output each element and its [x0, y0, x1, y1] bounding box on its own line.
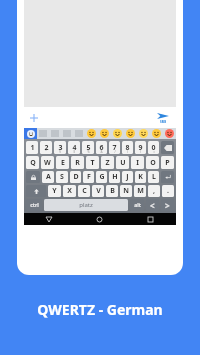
staticText: E [61, 158, 65, 168]
button[interactable]: Emoji [124, 128, 137, 139]
button[interactable]: K [135, 171, 146, 183]
staticText: " [45, 150, 47, 154]
button[interactable]: platz [44, 199, 128, 211]
button[interactable]: G [96, 171, 107, 183]
button[interactable]: Emoji [150, 128, 163, 139]
staticText: 3 [58, 143, 63, 153]
button[interactable]: Right [161, 199, 174, 211]
staticText: SMS [160, 120, 167, 124]
other: Right [161, 199, 174, 211]
button[interactable]: Backspace [161, 141, 174, 154]
staticText: 2 [44, 143, 49, 153]
button[interactable]: C [78, 185, 90, 197]
button[interactable]: B [106, 185, 118, 197]
button[interactable]: ctrl [26, 199, 42, 211]
staticText: $ [73, 150, 75, 154]
staticText: Y [52, 186, 57, 196]
staticText: platz [79, 201, 93, 209]
button[interactable]: J [122, 171, 133, 183]
button[interactable]: Left [146, 199, 159, 211]
button[interactable]: 6 [96, 141, 107, 154]
button[interactable]: D [70, 171, 81, 183]
button[interactable]: Emoji [98, 128, 111, 139]
button[interactable]: Z [101, 156, 114, 169]
button[interactable]: N [120, 185, 132, 197]
button[interactable]: V [92, 185, 104, 197]
button[interactable]: Caps lock [26, 171, 40, 183]
staticText: B [110, 186, 115, 196]
staticText: V [96, 186, 101, 196]
button[interactable]: alt [130, 199, 144, 211]
staticText: I [136, 158, 139, 168]
button[interactable]: X [63, 185, 76, 197]
button[interactable]: W [41, 156, 54, 169]
staticText: C [82, 186, 87, 196]
button[interactable]: U [116, 156, 129, 169]
button[interactable]: Recent apps [125, 213, 176, 225]
button[interactable]: . [162, 185, 174, 197]
button[interactable]: F [83, 171, 94, 183]
button[interactable]: Enter [161, 171, 174, 183]
other: Backspace [161, 141, 174, 154]
button[interactable]: Home [74, 213, 125, 225]
button[interactable]: R [71, 156, 84, 169]
staticText: > [165, 200, 170, 211]
button[interactable]: T [86, 156, 99, 169]
staticText: N [123, 186, 129, 196]
button[interactable]: Add attachment [24, 107, 44, 128]
staticText: W [44, 158, 51, 168]
button[interactable]: 2 [40, 141, 52, 154]
staticText: § [59, 150, 61, 154]
staticText: , [153, 186, 155, 196]
button[interactable]: H [109, 171, 120, 183]
button[interactable]: Y [48, 185, 61, 197]
button[interactable]: Emoji [163, 128, 176, 139]
button[interactable]: 4 [68, 141, 80, 154]
staticText: G [99, 172, 105, 182]
button[interactable]: Emoji [111, 128, 124, 139]
staticText: H [112, 172, 118, 182]
staticText: X [67, 186, 72, 196]
staticText: & [100, 150, 103, 154]
button[interactable]: 0 [148, 141, 159, 154]
button[interactable]: 9 [135, 141, 146, 154]
staticText: 6 [99, 143, 104, 153]
staticText: R [75, 158, 80, 168]
button[interactable]: A [42, 171, 54, 183]
button[interactable]: , [148, 185, 160, 197]
staticText: < [150, 200, 155, 211]
staticText: T [90, 158, 95, 168]
button[interactable]: 3 [54, 141, 66, 154]
button[interactable]: Q [26, 156, 39, 169]
button[interactable]: O [146, 156, 159, 169]
staticText: / [114, 150, 116, 154]
button[interactable]: Send SMS [150, 107, 176, 128]
staticText: 5 [86, 143, 91, 153]
button[interactable]: L [148, 171, 159, 183]
button[interactable]: M [134, 185, 146, 197]
button[interactable]: Emoji [137, 128, 150, 139]
button[interactable]: 8 [122, 141, 133, 154]
button[interactable]: 1 [26, 141, 38, 154]
other: Enter [161, 171, 174, 183]
staticText: P [165, 158, 170, 168]
button[interactable]: Emoji [24, 128, 37, 139]
button[interactable]: Shift [26, 185, 46, 197]
button[interactable]: S [56, 171, 68, 183]
button[interactable]: E [56, 156, 69, 169]
button[interactable]: P [161, 156, 174, 169]
button[interactable]: 7 [109, 141, 120, 154]
button[interactable]: I [131, 156, 144, 169]
staticText: F [87, 172, 91, 182]
button[interactable]: Back [24, 213, 74, 225]
button[interactable]: 5 [82, 141, 94, 154]
staticText: O [150, 158, 156, 168]
staticText: 1 [30, 143, 35, 153]
button[interactable]: Emoji [85, 128, 98, 139]
other: Shift [26, 185, 46, 197]
staticText: Z [105, 158, 110, 168]
